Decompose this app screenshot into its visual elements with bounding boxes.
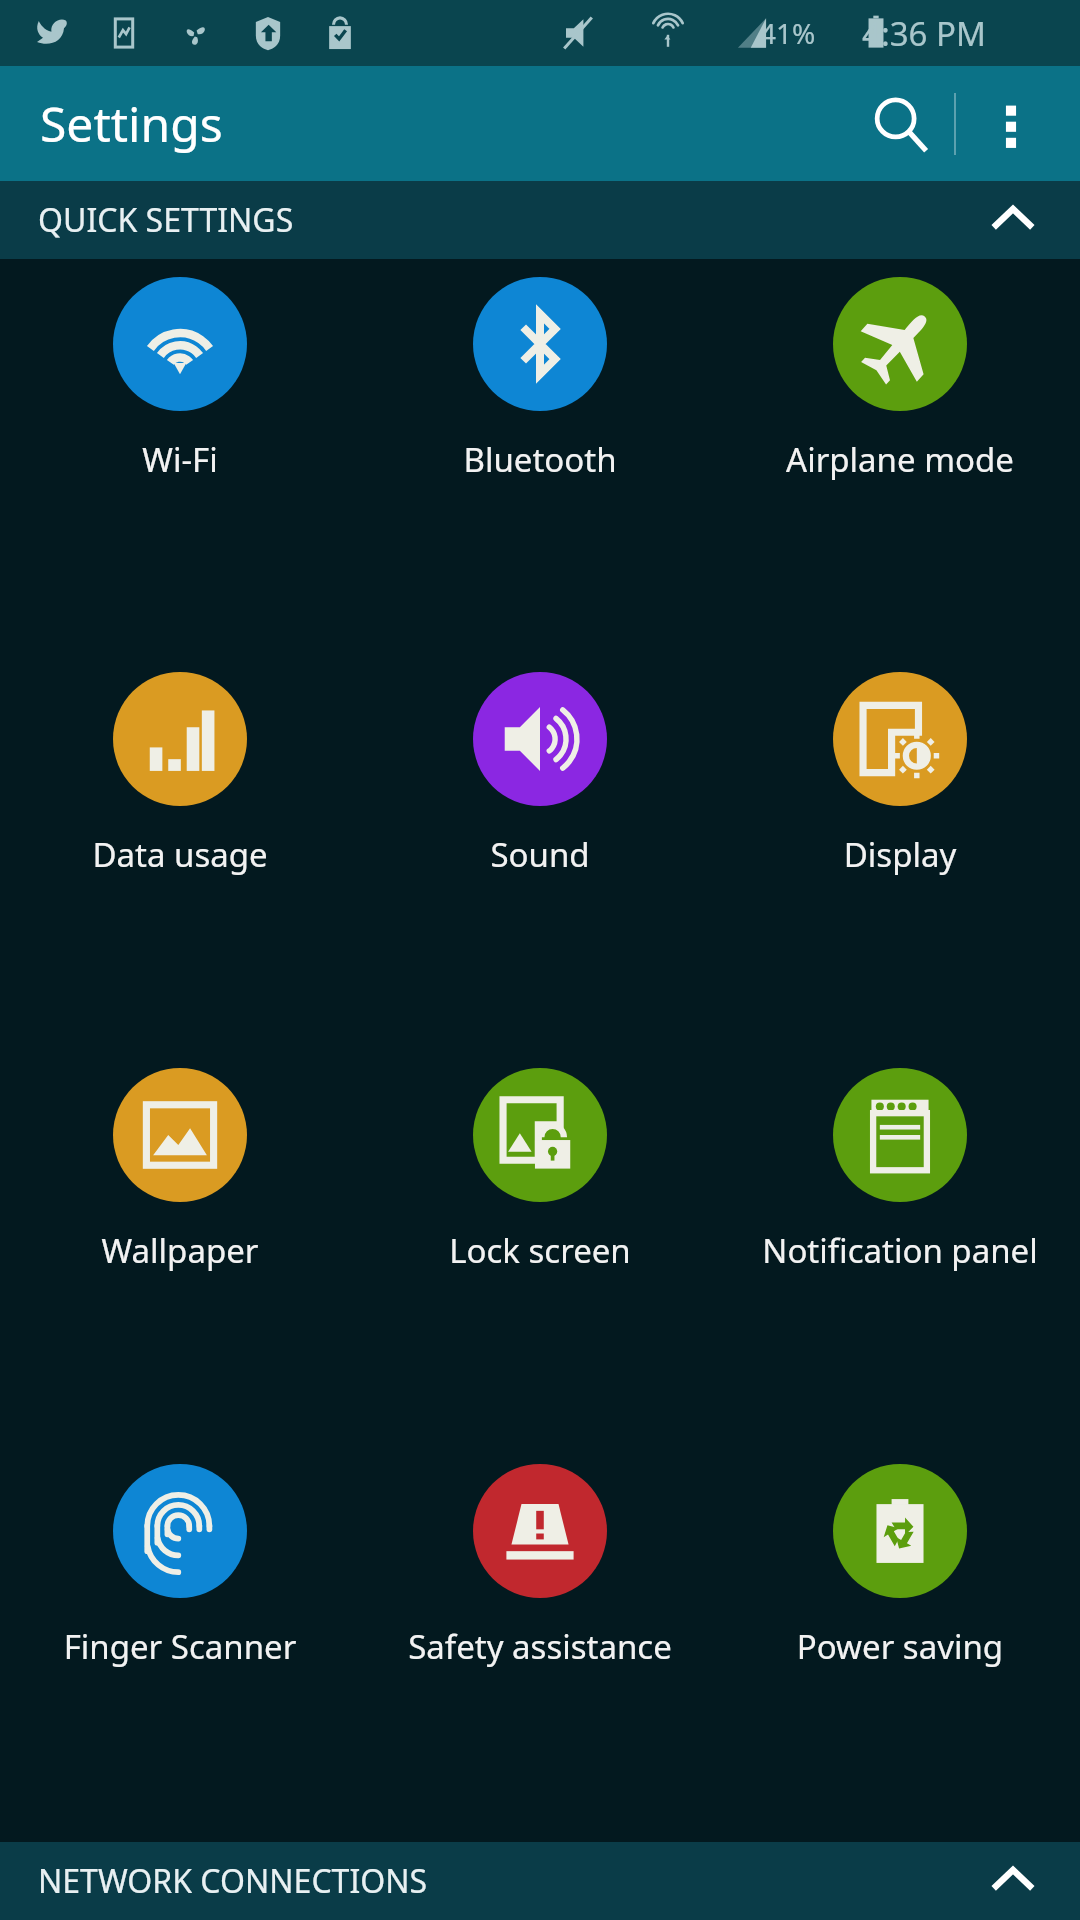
button[interactable]: Wi-Fi [0, 259, 360, 654]
button[interactable]: Sound [360, 654, 720, 1050]
staticText: Wi-Fi [6, 437, 354, 482]
button[interactable]: Lock screen [360, 1050, 720, 1446]
button[interactable]: Wallpaper [0, 1050, 360, 1446]
staticText: NETWORK CONNECTIONS [38, 1859, 428, 1903]
staticText: Finger Scanner [6, 1624, 354, 1669]
staticText: Display [726, 832, 1074, 877]
button[interactable]: NETWORK CONNECTIONS [0, 1842, 1080, 1920]
button[interactable]: QUICK SETTINGS [0, 181, 1080, 259]
staticText: 41% [760, 14, 816, 52]
button[interactable]: Airplane mode [720, 259, 1080, 654]
staticText: Settings [40, 91, 223, 156]
button[interactable]: Safety assistance [360, 1446, 720, 1842]
button[interactable]: Bluetooth [360, 259, 720, 654]
staticText: Lock screen [366, 1228, 714, 1273]
other: Collapse [990, 197, 1036, 243]
staticText: Notification panel [726, 1228, 1074, 1273]
staticText: Sound [366, 832, 714, 877]
button[interactable]: Display [720, 654, 1080, 1050]
button[interactable]: Notification panel [720, 1050, 1080, 1446]
button[interactable]: Data usage [0, 654, 360, 1050]
staticText: Airplane mode [726, 437, 1074, 482]
staticText: Power saving [726, 1624, 1074, 1669]
staticText: Data usage [6, 832, 354, 877]
staticText: 4:36 PM [862, 11, 986, 56]
button[interactable]: Finger Scanner [0, 1446, 360, 1842]
staticText: Safety assistance [366, 1624, 714, 1669]
staticText: Bluetooth [366, 437, 714, 482]
button[interactable]: More options [956, 69, 1066, 179]
staticText: QUICK SETTINGS [38, 198, 294, 242]
button[interactable]: Power saving [720, 1446, 1080, 1842]
other: Collapse [990, 1858, 1036, 1904]
staticText: Wallpaper [6, 1228, 354, 1273]
button[interactable]: Search [844, 69, 954, 179]
